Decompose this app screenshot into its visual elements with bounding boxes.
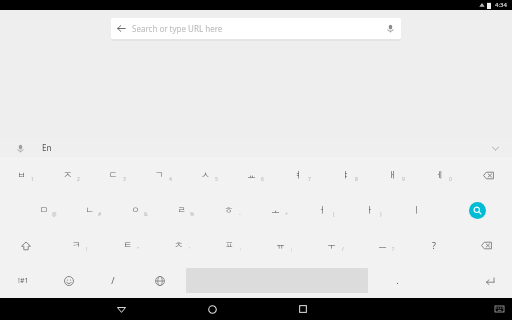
staticText: ㅋ (72, 239, 81, 250)
button[interactable]: ㅍ (206, 228, 257, 263)
button[interactable]: ㅇ (114, 193, 160, 228)
staticText: . (396, 274, 399, 286)
button[interactable]: ㅌ (104, 228, 155, 263)
staticText: ㅍ (225, 239, 234, 250)
staticText: ㅈ (63, 169, 72, 180)
button[interactable]: ㅈ (46, 157, 92, 193)
button[interactable]: Back (111, 18, 132, 39)
staticText: ) (380, 211, 382, 218)
button[interactable]: ㄴ (68, 193, 114, 228)
button[interactable]: . (372, 263, 426, 298)
button[interactable]: ㅁ (22, 193, 68, 228)
staticText: ㅑ (341, 169, 350, 180)
staticText: ㅕ (294, 169, 303, 180)
staticText: ㄱ (155, 169, 164, 180)
button[interactable]: Search (442, 193, 512, 228)
button[interactable]: ㄷ (92, 157, 138, 193)
button[interactable]: Emoji (46, 263, 92, 298)
button[interactable]: Voice search (380, 18, 401, 39)
staticText: ㅊ (174, 239, 183, 250)
staticText: ㅂ (17, 169, 26, 180)
button[interactable]: Home (195, 298, 229, 320)
button[interactable]: Recent apps (286, 298, 320, 320)
button[interactable]: ㅠ (257, 228, 308, 263)
staticText: # (98, 211, 102, 218)
staticText: ㅓ (318, 204, 327, 215)
staticText: ㅔ (435, 169, 444, 180)
button[interactable]: ㅣ (395, 193, 442, 228)
staticText: ㅏ (365, 204, 374, 215)
button[interactable]: ? (410, 228, 461, 263)
staticText: 8 (355, 176, 358, 183)
staticText: & (144, 211, 148, 218)
staticText: ㄷ (109, 169, 118, 180)
staticText: 9 (402, 176, 405, 183)
button[interactable]: Enter (467, 263, 512, 298)
staticText: ㅇ (131, 204, 140, 215)
button[interactable]: ㅑ (324, 157, 371, 193)
staticText: ㅜ (327, 239, 336, 250)
staticText: ㄴ (85, 204, 94, 215)
staticText: 3 (123, 176, 126, 183)
button[interactable]: ㅂ (0, 157, 46, 193)
button[interactable]: !#1 (0, 263, 46, 298)
staticText: + (285, 211, 288, 218)
button[interactable]: ㅏ (348, 193, 395, 228)
button[interactable]: Shift (0, 228, 52, 263)
staticText: ㅁ (39, 204, 48, 215)
staticText: En (42, 142, 52, 153)
button[interactable]: ㅓ (301, 193, 348, 228)
staticText: % (190, 211, 195, 218)
staticText: ㅐ (388, 169, 397, 180)
button[interactable]: ㅅ (184, 157, 230, 193)
staticText: 1 (31, 176, 34, 183)
button[interactable]: ㅜ (308, 228, 359, 263)
button[interactable]: Back (104, 298, 138, 320)
button[interactable]: En (42, 142, 52, 153)
button[interactable]: / (92, 263, 137, 298)
staticText: - (239, 211, 241, 218)
button[interactable]: Back (111, 18, 401, 39)
button[interactable]: Backspace (465, 157, 512, 193)
staticText: ㅛ (247, 169, 256, 180)
button[interactable]: ㅕ (277, 157, 324, 193)
button[interactable]: ㅐ (371, 157, 418, 193)
button[interactable]: ㅡ (359, 228, 410, 263)
staticText: ( (333, 211, 335, 218)
button[interactable]: Keyboard (486, 298, 512, 320)
staticText: 4 (169, 176, 172, 183)
staticText: !#1 (18, 276, 29, 286)
button[interactable]: ㅗ (254, 193, 301, 228)
staticText: : (240, 246, 242, 253)
button[interactable]: Delete (461, 228, 512, 263)
staticText: 5 (215, 176, 218, 183)
button[interactable]: ㅔ (418, 157, 465, 193)
staticText: ㅠ (276, 239, 285, 250)
staticText: ; (291, 246, 293, 253)
button[interactable]: ㅎ (207, 193, 254, 228)
staticText: / (342, 246, 344, 253)
staticText: ㅡ (378, 239, 387, 250)
staticText: ! (86, 246, 88, 253)
button[interactable]: ㅊ (155, 228, 206, 263)
staticText: ㄹ (177, 204, 186, 215)
staticText: @ (52, 211, 57, 218)
button[interactable]: Voice input (12, 140, 28, 156)
staticText: 4:34 (495, 1, 507, 9)
staticText: " (137, 246, 140, 253)
staticText: 0 (449, 176, 452, 183)
staticText: 7 (308, 176, 311, 183)
staticText: ? (392, 246, 395, 253)
button[interactable]: Expand suggestions (488, 141, 502, 155)
button[interactable]: ㅋ (52, 228, 104, 263)
button[interactable]: ㅛ (230, 157, 277, 193)
button[interactable]: Change language (137, 263, 182, 298)
button[interactable]: ㄹ (160, 193, 207, 228)
staticText: ㅎ (224, 204, 233, 215)
button[interactable]: ㄱ (138, 157, 184, 193)
staticText: ㅣ (412, 204, 421, 215)
staticText: ' (189, 246, 191, 253)
staticText: ㅗ (271, 204, 280, 215)
staticText: ? (432, 239, 436, 251)
